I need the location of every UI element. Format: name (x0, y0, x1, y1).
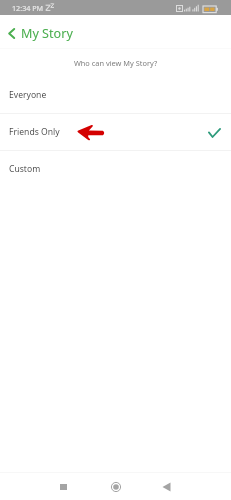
button[interactable]: Friends Only (0, 114, 231, 151)
staticText: Friends Only (9, 126, 60, 138)
staticText: My Story (21, 25, 73, 42)
staticText: 12:34 PM (12, 3, 44, 13)
staticText: Who can view My Story? (0, 58, 231, 68)
staticText: Custom (9, 163, 41, 175)
button[interactable]: Custom (0, 151, 231, 187)
button[interactable]: Home (105, 476, 126, 497)
button[interactable]: Back (156, 476, 177, 497)
staticText: Everyone (9, 89, 47, 101)
button[interactable]: Back (3, 25, 19, 41)
button[interactable]: Recent apps (53, 476, 74, 497)
button[interactable]: Everyone (0, 77, 231, 114)
